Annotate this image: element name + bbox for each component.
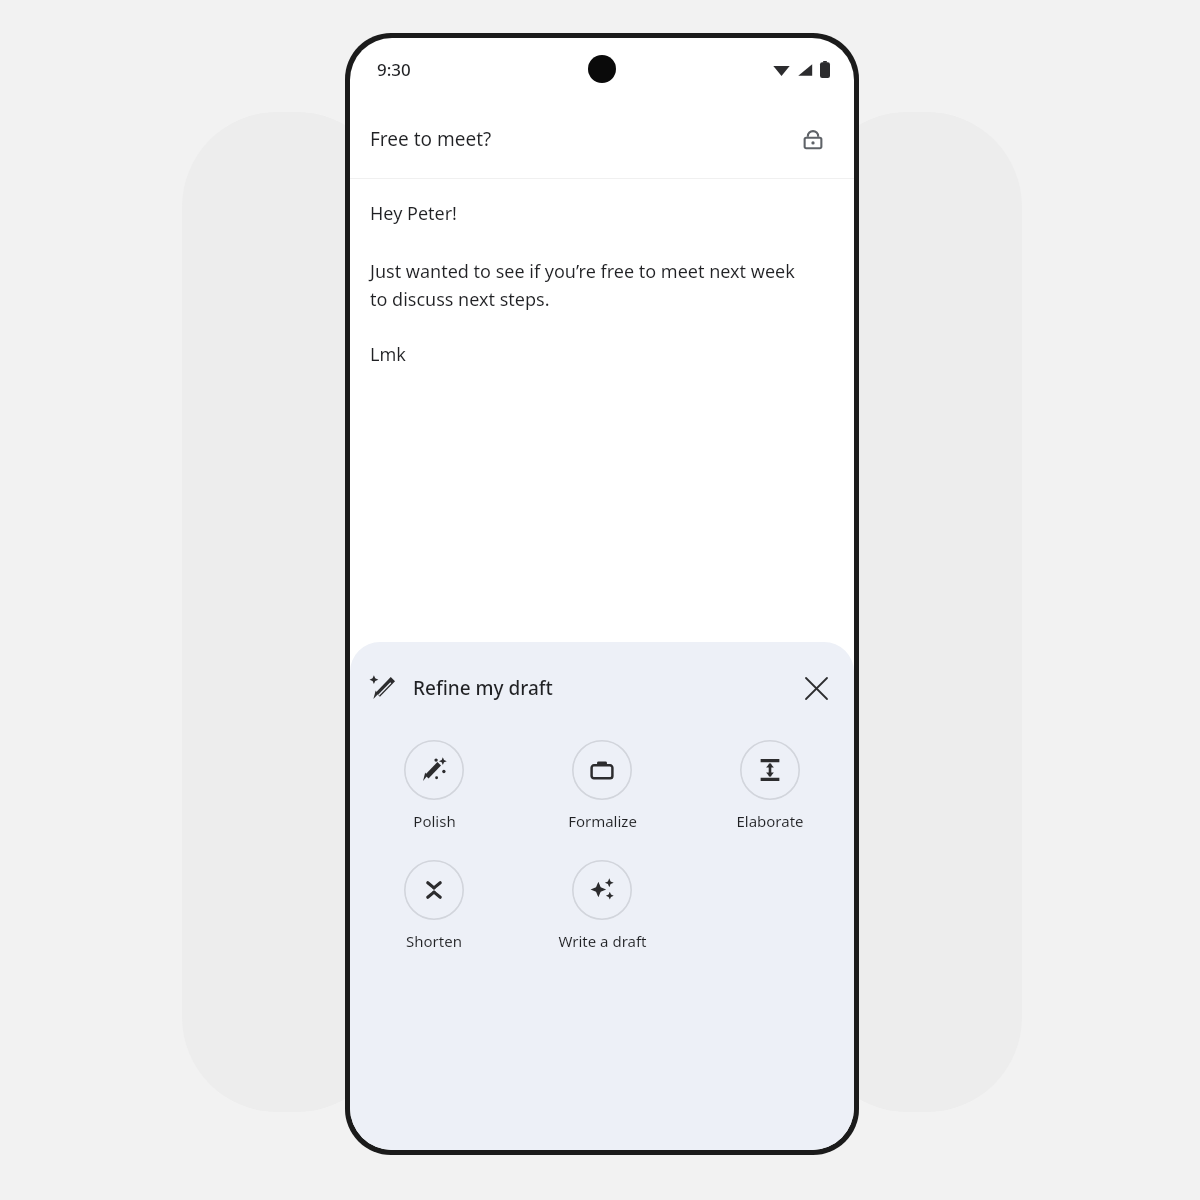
staticText: Shorten: [406, 931, 462, 951]
staticText: Just wanted to see if you’re free to mee…: [370, 259, 795, 311]
button[interactable]: Confidential mode: [792, 118, 834, 160]
staticText: 9:30: [377, 58, 411, 81]
button[interactable]: Polish: [350, 738, 518, 833]
staticText: Lmk: [370, 342, 406, 367]
button[interactable]: Close: [796, 668, 836, 708]
button[interactable]: Elaborate: [686, 738, 854, 833]
staticText: Formalize: [568, 811, 637, 831]
staticText: Free to meet?: [370, 126, 792, 152]
staticText: Hey Peter!: [370, 201, 457, 226]
staticText: Elaborate: [736, 811, 804, 831]
staticText: Refine my draft: [413, 675, 796, 701]
button[interactable]: Write a draft: [518, 858, 686, 953]
button[interactable]: Formalize: [518, 738, 686, 833]
staticText: Polish: [413, 811, 456, 831]
button[interactable]: Shorten: [350, 858, 518, 953]
staticText: Write a draft: [558, 931, 647, 951]
